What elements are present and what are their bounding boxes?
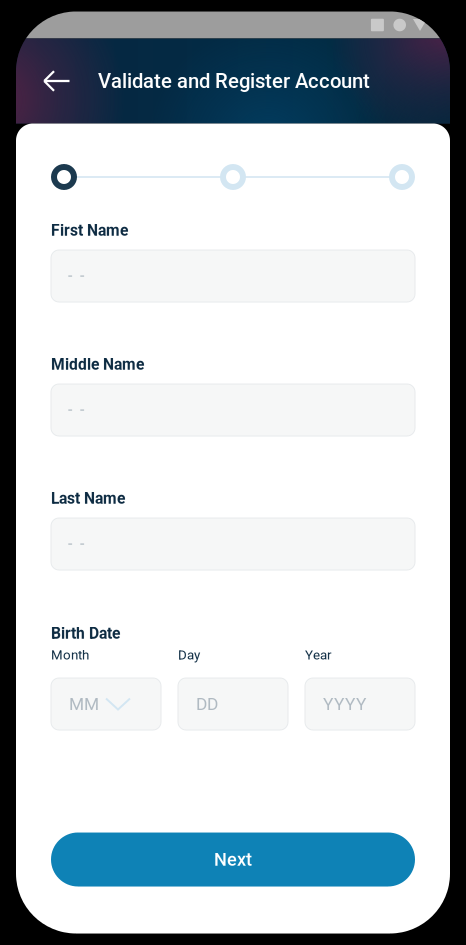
staticText: First Name xyxy=(51,221,128,240)
staticText: Birth Date xyxy=(51,624,120,643)
staticText: Day xyxy=(178,647,200,663)
button[interactable]: Back xyxy=(37,59,77,103)
staticText: MM xyxy=(69,694,99,714)
button[interactable]: DD xyxy=(178,678,288,730)
button[interactable]: YYYY xyxy=(305,678,415,730)
staticText: Middle Name xyxy=(51,355,144,374)
button[interactable]: MM xyxy=(51,678,161,730)
staticText: - - xyxy=(68,267,84,285)
staticText: - - xyxy=(68,535,84,553)
button[interactable]: Next xyxy=(51,832,415,886)
staticText: Validate and Register Account xyxy=(98,69,370,93)
staticText: YYYY xyxy=(323,694,366,714)
staticText: DD xyxy=(196,694,218,714)
staticText: Next xyxy=(214,849,252,870)
staticText: Last Name xyxy=(51,489,125,508)
staticText: - - xyxy=(68,401,84,419)
staticText: Month xyxy=(51,647,89,663)
staticText: Year xyxy=(305,647,332,663)
